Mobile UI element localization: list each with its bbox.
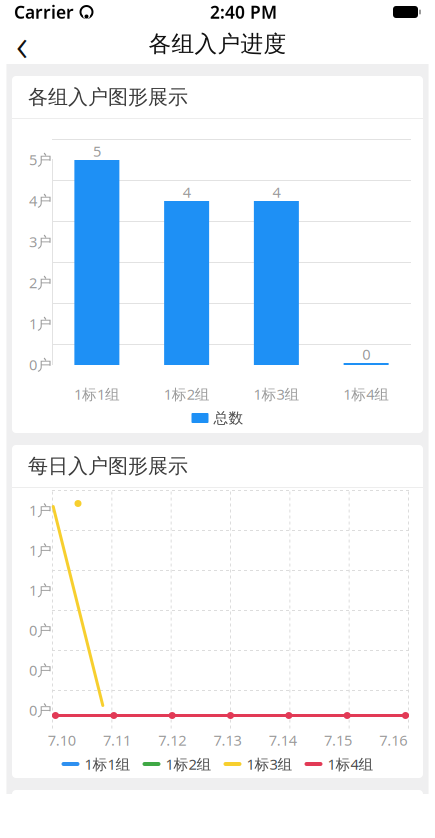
staticText: 0 [362,344,370,364]
staticText: 1户 [29,580,52,600]
staticText: 5 [93,141,101,161]
staticText: 7.10 [48,730,76,750]
staticText: 7.15 [324,730,352,750]
staticText: 1户 [29,540,52,560]
staticText: 7.11 [103,730,131,750]
staticText: ‹ [16,14,28,74]
staticText: 0户 [29,355,52,374]
staticText: 各组入户图形展示 [28,85,188,109]
staticText: 1标1组 [84,754,130,774]
staticText: 1标4组 [327,754,373,774]
staticText: 4 [183,182,191,202]
staticText: 0户 [29,660,52,680]
staticText: 1标2组 [165,754,211,774]
staticText: 1标1组 [74,384,120,404]
staticText: 7.14 [269,730,297,750]
staticText: 1户 [29,500,52,520]
staticText: 总数 [213,409,243,427]
staticText: 7.16 [379,730,407,750]
staticText: 4户 [29,191,52,210]
staticText: 7.13 [213,730,241,750]
staticText: 1标3组 [253,384,299,404]
staticText: 0户 [29,620,52,640]
staticText: 1标2组 [164,384,210,404]
staticText: 1标3组 [246,754,292,774]
staticText: 每日入户图形展示 [28,454,188,478]
staticText: 1户 [29,314,52,333]
staticText: 7.12 [158,730,186,750]
staticText: 3户 [29,232,52,251]
staticText: 各组入户进度 [148,30,286,58]
button[interactable]: Back [0,24,44,64]
staticText: 4 [272,182,280,202]
staticText: 2户 [29,273,52,292]
staticText: 1标4组 [343,384,389,404]
staticText: 5户 [29,150,52,169]
staticText: 0户 [29,700,52,720]
